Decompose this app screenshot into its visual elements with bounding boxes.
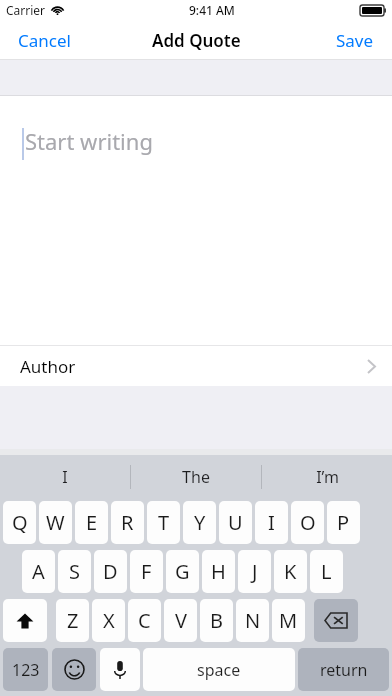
- staticText: J: [252, 558, 258, 585]
- button[interactable]: D: [94, 550, 127, 593]
- staticText: space: [197, 659, 241, 681]
- staticText: L: [321, 558, 332, 585]
- button[interactable]: Backspace: [314, 599, 358, 642]
- button[interactable]: space: [143, 648, 295, 691]
- staticText: Start writing: [25, 126, 153, 156]
- staticText: Cancel: [18, 29, 71, 52]
- staticText: X: [103, 607, 115, 634]
- button[interactable]: V: [164, 599, 197, 642]
- staticText: N: [245, 607, 261, 634]
- staticText: A: [32, 558, 45, 585]
- button[interactable]: R: [111, 501, 144, 544]
- staticText: Save: [336, 29, 374, 52]
- staticText: Add Quote: [152, 29, 241, 52]
- staticText: V: [175, 607, 187, 634]
- button[interactable]: O: [291, 501, 324, 544]
- button[interactable]: G: [166, 550, 199, 593]
- staticText: M: [279, 607, 298, 634]
- staticText: T: [158, 509, 170, 536]
- button[interactable]: K: [274, 550, 307, 593]
- button[interactable]: N: [236, 599, 269, 642]
- staticText: C: [138, 607, 151, 634]
- button[interactable]: J: [238, 550, 271, 593]
- staticText: P: [337, 509, 350, 536]
- staticText: E: [86, 509, 98, 536]
- staticText: I: [268, 509, 275, 536]
- staticText: K: [284, 558, 297, 585]
- button[interactable]: I: [0, 455, 130, 498]
- staticText: G: [175, 558, 190, 585]
- button[interactable]: Q: [3, 501, 36, 544]
- staticText: Author: [20, 355, 76, 378]
- button[interactable]: Z: [56, 599, 89, 642]
- button[interactable]: The: [131, 455, 261, 498]
- button[interactable]: Cancel: [0, 20, 89, 60]
- button[interactable]: W: [39, 501, 72, 544]
- staticText: The: [182, 466, 210, 488]
- button[interactable]: H: [202, 550, 235, 593]
- button[interactable]: Shift: [3, 599, 47, 642]
- staticText: U: [228, 509, 243, 536]
- staticText: Carrier: [6, 2, 46, 18]
- button[interactable]: B: [200, 599, 233, 642]
- button[interactable]: S: [58, 550, 91, 593]
- button[interactable]: M: [272, 599, 305, 642]
- button[interactable]: U: [219, 501, 252, 544]
- button[interactable]: Author: [0, 345, 392, 386]
- staticText: D: [103, 558, 118, 585]
- staticText: O: [300, 509, 316, 536]
- button[interactable]: I: [255, 501, 288, 544]
- button[interactable]: Emoji: [52, 648, 96, 691]
- button[interactable]: 123: [3, 648, 48, 691]
- staticText: S: [69, 558, 80, 585]
- button[interactable]: F: [130, 550, 163, 593]
- staticText: Z: [67, 607, 79, 634]
- staticText: 9:41 AM: [189, 2, 235, 18]
- button[interactable]: A: [22, 550, 55, 593]
- staticText: H: [211, 558, 226, 585]
- button[interactable]: L: [310, 550, 343, 593]
- button[interactable]: C: [128, 599, 161, 642]
- staticText: Y: [194, 509, 206, 536]
- staticText: B: [210, 607, 223, 634]
- button[interactable]: E: [75, 501, 108, 544]
- button[interactable]: Save: [318, 20, 392, 60]
- staticText: F: [141, 558, 152, 585]
- staticText: I: [62, 466, 68, 488]
- button[interactable]: T: [147, 501, 180, 544]
- staticText: R: [121, 509, 134, 536]
- button[interactable]: Dictation: [100, 648, 140, 691]
- staticText: I’m: [316, 466, 339, 488]
- staticText: W: [46, 509, 65, 536]
- button[interactable]: return: [298, 648, 389, 691]
- button[interactable]: X: [92, 599, 125, 642]
- button[interactable]: Y: [183, 501, 216, 544]
- staticText: Q: [12, 509, 28, 536]
- button[interactable]: I’m: [262, 455, 392, 498]
- staticText: 123: [12, 659, 40, 681]
- button[interactable]: P: [327, 501, 360, 544]
- staticText: return: [320, 659, 368, 681]
